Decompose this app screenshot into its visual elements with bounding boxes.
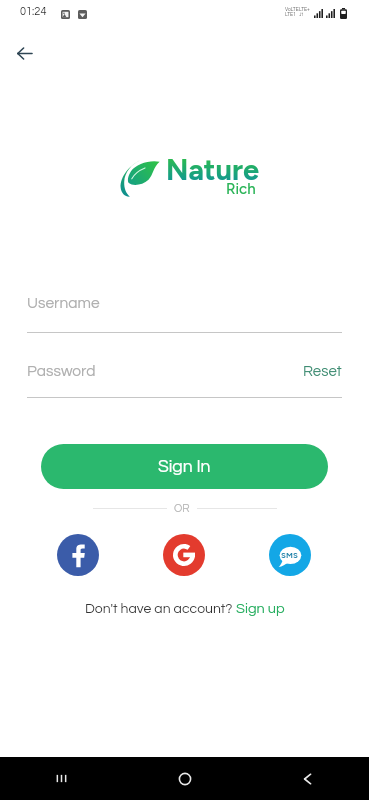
staticText: Sign up	[236, 601, 285, 616]
button[interactable]: Reset	[303, 364, 342, 379]
button[interactable]: Back	[2, 31, 47, 76]
staticText: LTE1	[285, 12, 296, 17]
staticText: LTE+	[299, 7, 310, 12]
button[interactable]: Sign In	[41, 444, 328, 489]
staticText: Rich	[226, 180, 256, 198]
button[interactable]: Sign up	[236, 601, 285, 616]
staticText: OR	[174, 503, 190, 514]
staticText: Reset	[303, 364, 342, 379]
staticText: VoLTE	[285, 7, 299, 12]
staticText: SMS	[281, 550, 299, 560]
staticText: ↓↑	[299, 12, 304, 17]
staticText: Sign In	[158, 458, 211, 476]
button[interactable]: Home	[123, 757, 246, 800]
button[interactable]: Back	[246, 757, 369, 800]
button[interactable]: Sign in with Facebook	[57, 534, 99, 576]
staticText: Nature	[166, 152, 260, 187]
staticText: 01:24	[20, 6, 47, 17]
staticText: Username	[27, 295, 100, 311]
staticText: Password	[27, 363, 96, 379]
staticText: Don't have an account?	[85, 602, 236, 616]
button[interactable]: Recents	[0, 757, 123, 800]
button[interactable]: Sign in with Google	[163, 534, 205, 576]
button[interactable]: Sign in with SMS	[269, 534, 311, 576]
